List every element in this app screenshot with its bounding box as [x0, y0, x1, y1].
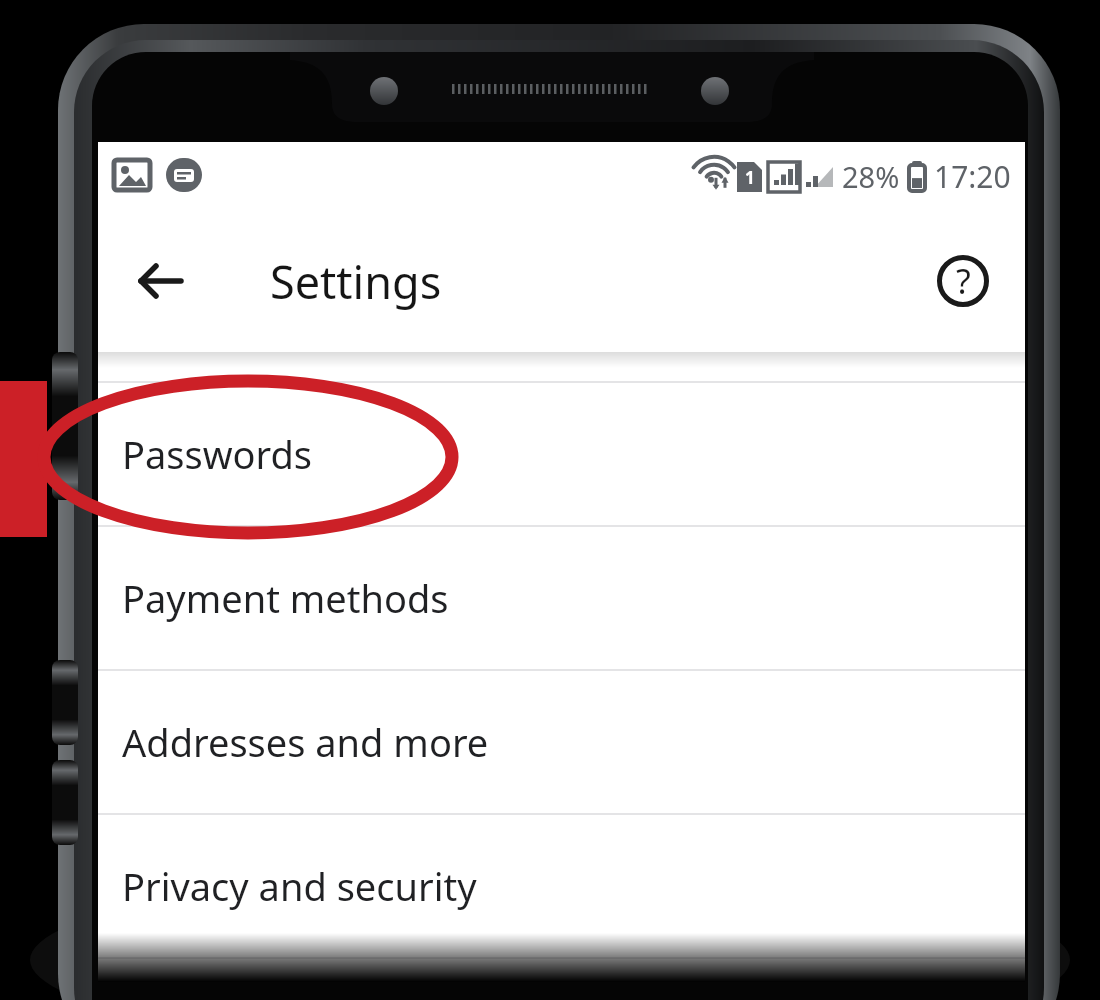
button[interactable]: Payment methods: [98, 527, 1025, 669]
staticText: 17:20: [934, 156, 1011, 197]
button[interactable]: Back: [124, 245, 196, 317]
staticText: Addresses and more: [122, 716, 489, 768]
staticText: Settings: [270, 251, 442, 312]
staticText: Passwords: [122, 428, 313, 480]
button[interactable]: Passwords: [98, 383, 1025, 525]
staticText: Payment methods: [122, 572, 449, 624]
staticText: 28%: [842, 157, 900, 196]
staticText: Privacy and security: [122, 860, 477, 912]
button[interactable]: Addresses and more: [98, 671, 1025, 813]
button[interactable]: Privacy and security: [98, 815, 1025, 957]
staticText: ?: [956, 258, 971, 304]
button[interactable]: Help: [927, 245, 999, 317]
staticText: 1: [745, 166, 755, 189]
